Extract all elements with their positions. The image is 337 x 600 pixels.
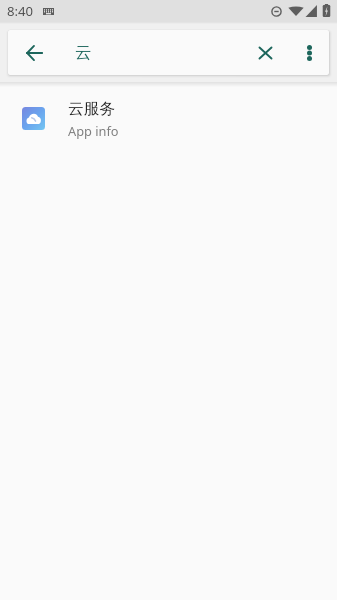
button[interactable]: Navigate up <box>17 36 51 70</box>
button[interactable]: 云 <box>60 30 240 75</box>
staticText: App info <box>68 122 119 139</box>
staticText: 云服务 <box>68 99 116 119</box>
button[interactable]: More options <box>293 37 325 69</box>
staticText: 8:40 <box>7 2 34 20</box>
staticText: 云 <box>75 42 92 63</box>
button[interactable]: Clear query <box>248 36 282 70</box>
button[interactable]: 云服务 <box>0 95 337 142</box>
